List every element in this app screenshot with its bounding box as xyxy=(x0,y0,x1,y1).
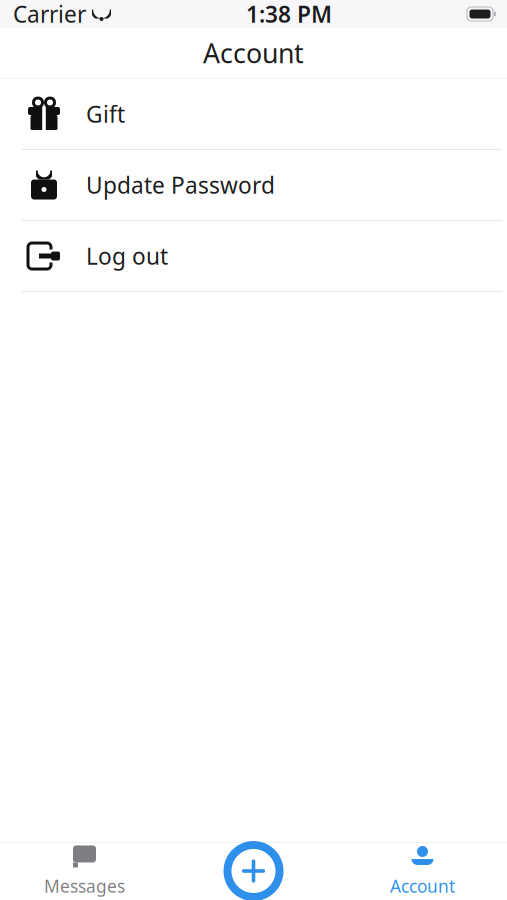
button[interactable]: Gift xyxy=(0,79,507,150)
staticText: Gift xyxy=(86,99,125,129)
staticText: Carrier xyxy=(13,0,86,29)
staticText: 1:38 PM xyxy=(246,0,332,29)
staticText: Account xyxy=(203,35,304,71)
button[interactable]: Account xyxy=(338,843,507,900)
staticText: Log out xyxy=(86,241,168,271)
staticText: Account xyxy=(390,874,455,897)
staticText: Update Password xyxy=(86,170,275,200)
button[interactable]: Create new xyxy=(223,841,283,900)
button[interactable]: Log out xyxy=(0,221,507,292)
button[interactable]: Messages xyxy=(0,843,169,900)
staticText: Messages xyxy=(44,874,125,897)
button[interactable]: Update Password xyxy=(0,150,507,221)
